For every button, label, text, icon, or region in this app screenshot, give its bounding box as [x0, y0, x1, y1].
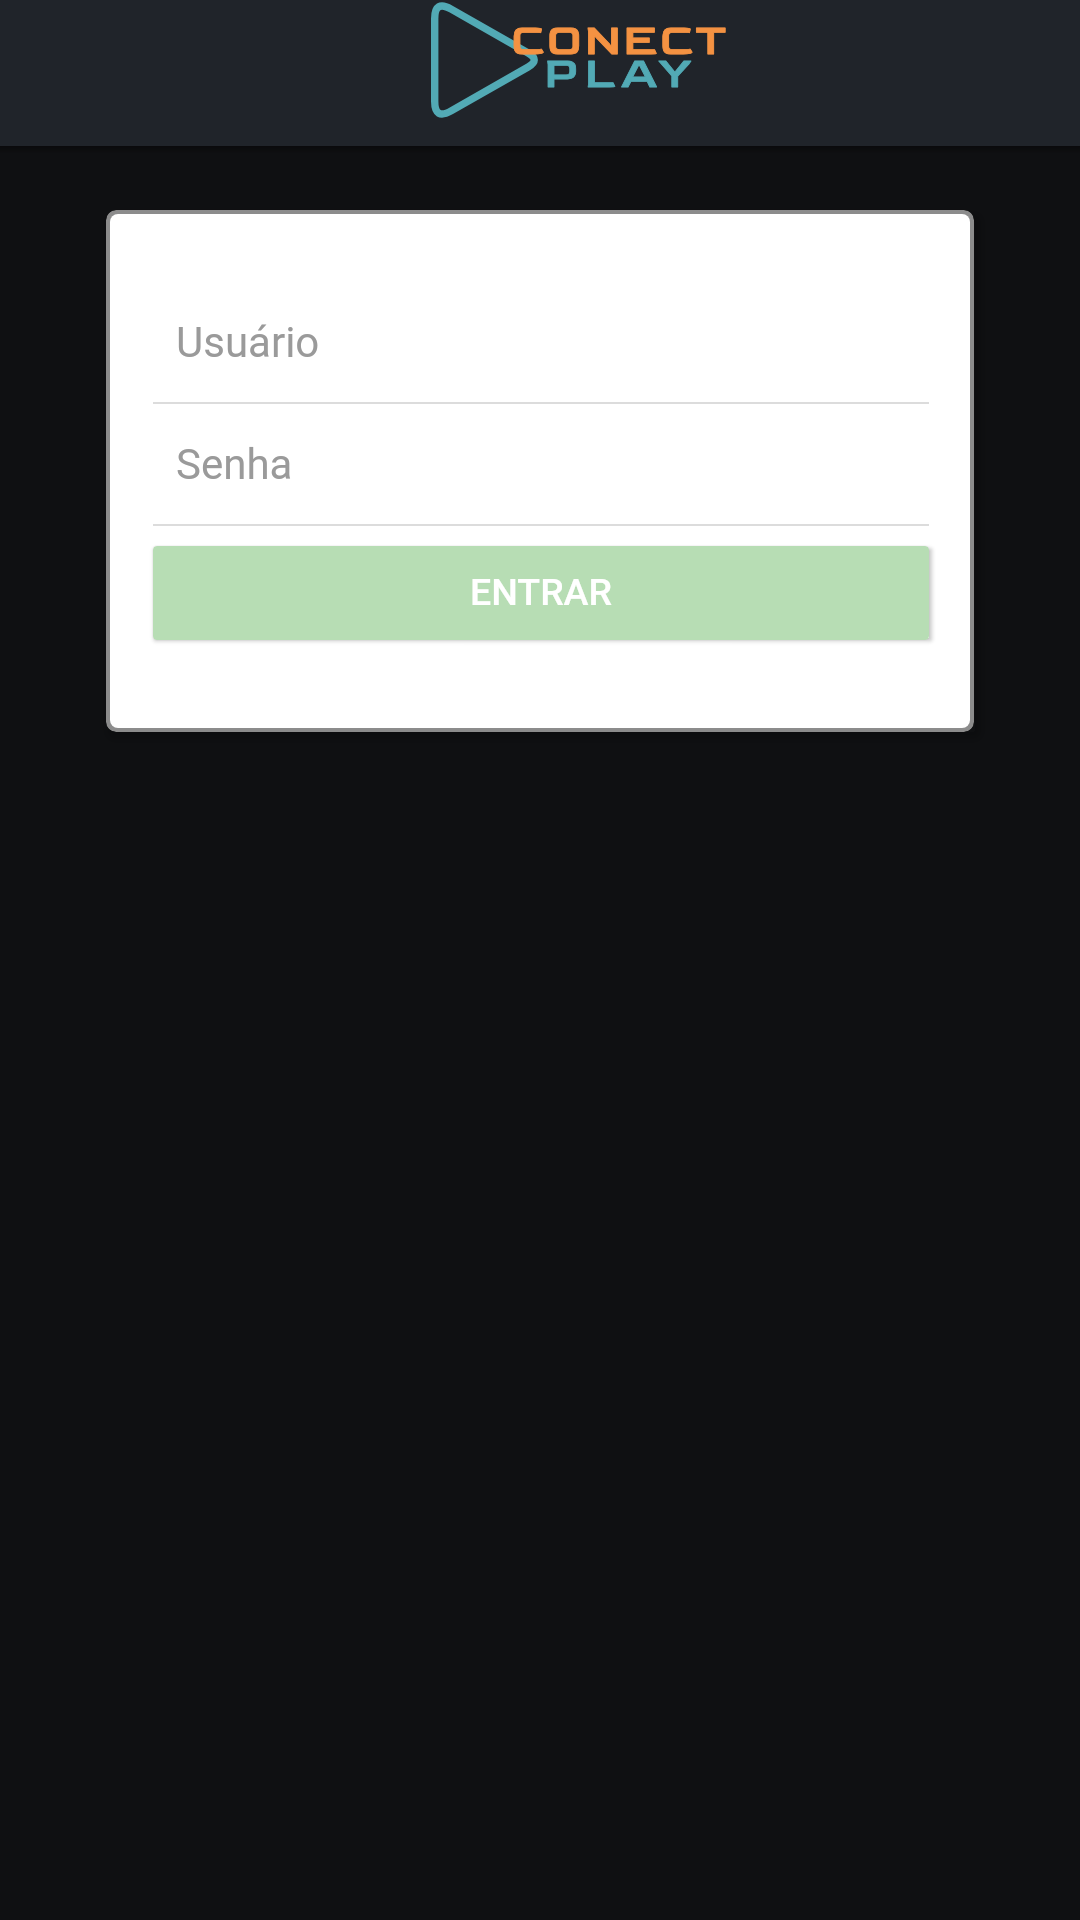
staticText: PLAY: [544, 46, 698, 100]
staticText: Usuário: [176, 318, 320, 367]
button[interactable]: ENTRAR: [153, 546, 929, 640]
button[interactable]: Usuário: [153, 282, 929, 402]
staticText: Senha: [176, 440, 293, 489]
staticText: ENTRAR: [470, 570, 612, 614]
staticText: CONECT: [511, 14, 729, 67]
button[interactable]: Senha: [153, 404, 929, 524]
staticText: PLAY: [544, 46, 698, 100]
staticText: CONECT: [511, 14, 729, 67]
other: Conect Play logo: [431, 0, 544, 124]
